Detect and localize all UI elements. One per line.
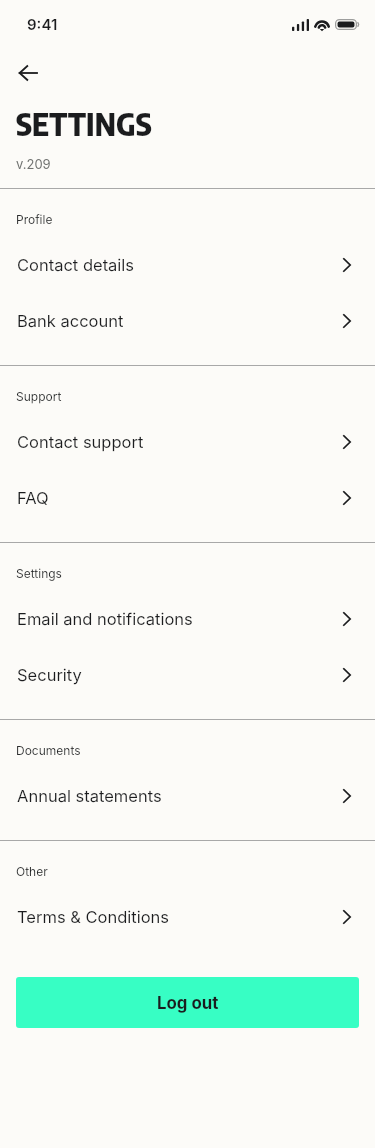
staticText: Contact details	[17, 255, 135, 275]
staticText: Bank account	[17, 311, 124, 331]
button[interactable]: Security	[0, 647, 375, 703]
staticText: SETTINGS	[16, 104, 152, 143]
staticText: Support	[16, 389, 62, 404]
button[interactable]: Back	[8, 53, 47, 92]
button[interactable]: Annual statements	[0, 768, 375, 824]
staticText: Email and notifications	[17, 609, 193, 629]
staticText: 9:41	[27, 15, 58, 33]
staticText: Profile	[16, 212, 53, 227]
staticText: Documents	[16, 743, 81, 758]
staticText: FAQ	[17, 488, 49, 508]
button[interactable]: Email and notifications	[0, 591, 375, 647]
button[interactable]: Log out	[16, 977, 359, 1028]
staticText: Terms & Conditions	[17, 907, 170, 927]
button[interactable]: FAQ	[0, 470, 375, 526]
button[interactable]: Terms & Conditions	[0, 889, 375, 945]
staticText: Security	[17, 665, 82, 685]
staticText: Annual statements	[17, 786, 162, 806]
staticText: v.209	[16, 156, 51, 172]
button[interactable]: Bank account	[0, 293, 375, 349]
staticText: Other	[16, 864, 48, 879]
staticText: Settings	[16, 566, 62, 581]
staticText: Contact support	[17, 432, 144, 452]
staticText: Log out	[157, 993, 219, 1013]
button[interactable]: Contact details	[0, 237, 375, 293]
button[interactable]: Contact support	[0, 414, 375, 470]
